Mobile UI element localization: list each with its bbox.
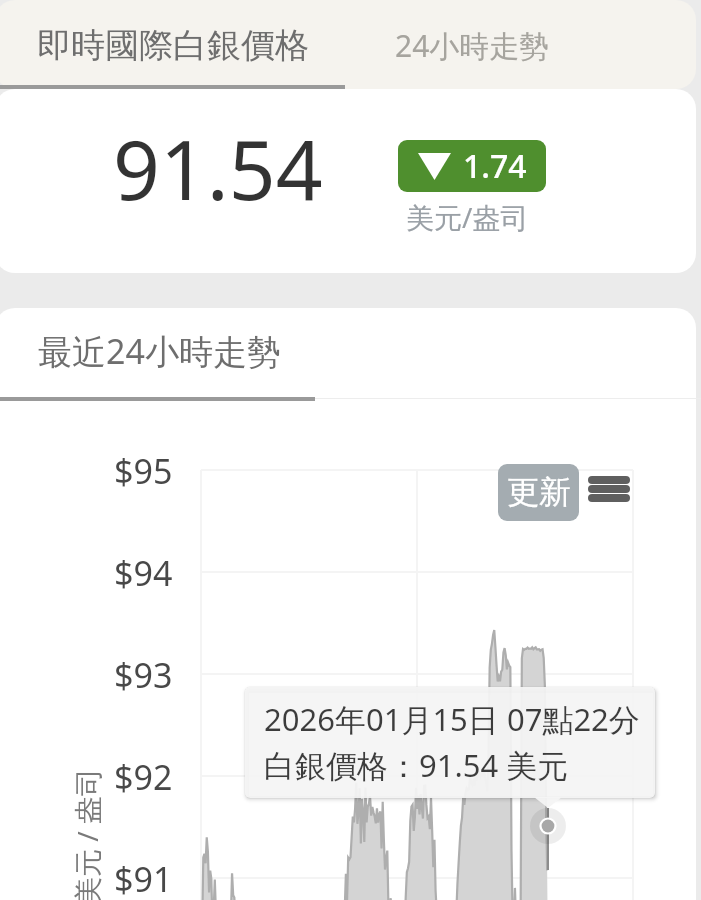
button[interactable]: 最近24小時走勢 bbox=[38, 308, 281, 398]
staticText: 即時國際白銀價格 bbox=[37, 24, 309, 67]
button[interactable]: 即時國際白銀價格 bbox=[0, 0, 345, 85]
staticText: $92 bbox=[114, 754, 173, 800]
button[interactable]: 1.74 bbox=[398, 140, 546, 192]
staticText: 91.54 bbox=[113, 112, 323, 224]
staticText: 美元 / 盎司 bbox=[68, 768, 106, 900]
staticText: 1.74 bbox=[463, 144, 527, 188]
button[interactable]: Chart menu bbox=[586, 468, 632, 510]
staticText: 美元/盎司 bbox=[406, 198, 529, 236]
button[interactable]: 更新 bbox=[498, 464, 579, 521]
staticText: $91 bbox=[114, 856, 173, 900]
staticText: 最近24小時走勢 bbox=[38, 328, 281, 374]
staticText: 更新 bbox=[507, 472, 571, 512]
staticText: 2026年01月15日 07點22分 bbox=[264, 698, 640, 740]
staticText: 白銀價格：91.54 美元 bbox=[264, 744, 569, 786]
staticText: $95 bbox=[114, 448, 173, 494]
staticText: $93 bbox=[114, 652, 173, 698]
staticText: 24小時走勢 bbox=[395, 25, 550, 66]
staticText: $94 bbox=[114, 550, 173, 596]
button[interactable]: 24小時走勢 bbox=[345, 0, 701, 85]
